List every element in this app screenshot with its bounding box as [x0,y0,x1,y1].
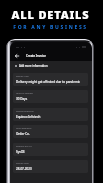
button[interactable]: Terms of Payment [13,90,88,103]
button[interactable]: Add more information [10,63,50,69]
button[interactable]: Supplier Reference [13,108,88,121]
button[interactable]: Back [13,52,21,60]
staticText: Other Reference [16,127,32,130]
staticText: Order Co. [16,132,30,136]
staticText: Add more information [19,64,48,68]
staticText: SysCB [16,150,25,154]
staticText: Supplier Reference [16,110,34,113]
button[interactable]: Delivery Note [13,73,88,86]
staticText: FOR ANY BUSINESS [0,24,102,31]
staticText: Dispatch Doc No. [16,145,33,148]
button[interactable]: Dispatch Doc No. [13,143,88,156]
staticText: Create Invoice [26,54,46,58]
staticText: Delivery Date [16,162,29,165]
staticText: Terms of Payment [16,92,34,95]
staticText: ALL DETAILS [0,7,102,22]
staticText: 30 Days [16,97,28,101]
button[interactable]: Delivery Date [13,160,88,173]
staticText: 28-07-2020 [16,167,32,171]
staticText: Delivery might get affected due to pande… [16,80,81,84]
staticText: Delivery Note [16,75,29,78]
staticText: Equinox Infotech [16,115,41,119]
button[interactable]: Other Reference [13,125,88,138]
